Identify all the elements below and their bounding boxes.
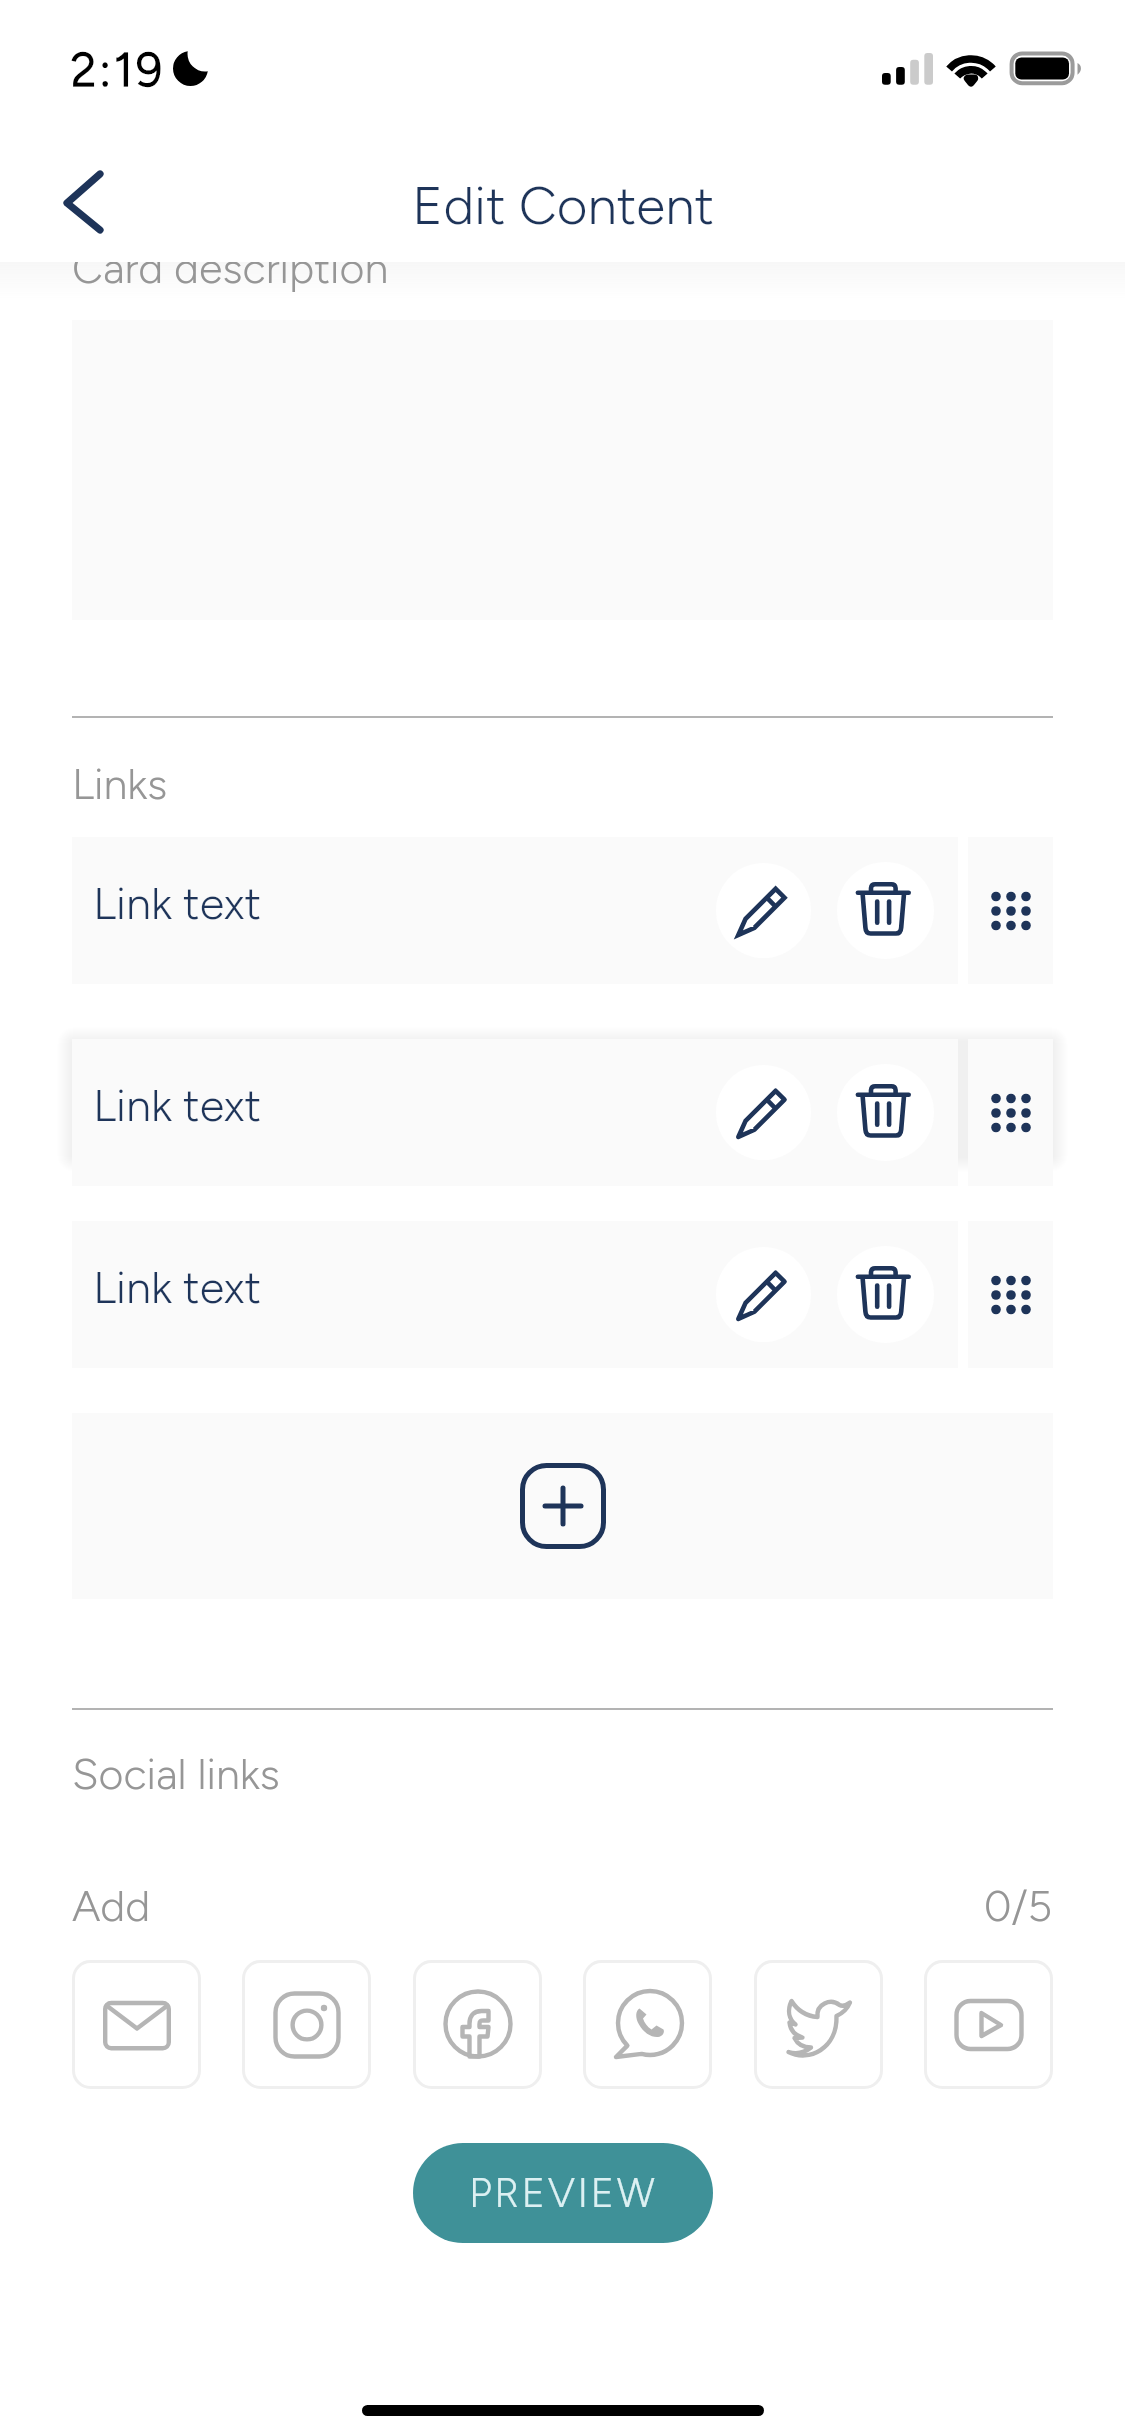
button[interactable]: Add link [520,1463,606,1549]
staticText: 0/5 [984,1880,1053,1932]
button[interactable]: Delete link [837,862,934,959]
staticText: Link text [93,1078,261,1132]
button[interactable]: YouTube [924,1960,1053,2089]
button[interactable]: WhatsApp [583,1960,712,2089]
button[interactable]: Reorder link [968,837,1053,984]
button[interactable]: Twitter [754,1960,883,2089]
staticText: Add [72,1880,151,1932]
staticText: Edit Content [412,174,714,238]
button[interactable]: Delete link [837,1246,934,1343]
button[interactable]: Link text [72,1221,958,1368]
button[interactable]: Delete link [837,1064,934,1161]
button[interactable]: Facebook [413,1960,542,2089]
button[interactable]: Reorder link [968,1221,1053,1368]
button[interactable]: PREVIEW [413,2143,713,2243]
button[interactable]: Email [72,1960,201,2089]
staticText: Card description [72,242,389,294]
button[interactable]: Back [30,158,104,248]
staticText: 2:19 [71,42,166,97]
button[interactable]: Instagram [242,1960,371,2089]
button[interactable]: Link text [72,837,958,984]
staticText: PREVIEW [469,2169,658,2217]
button[interactable]: Edit link [716,1065,811,1160]
staticText: Link text [93,876,261,930]
staticText: Link text [93,1260,261,1314]
button[interactable]: Reorder link [968,1039,1053,1186]
staticText: Social links [72,1748,280,1800]
button[interactable]: Edit link [716,1247,811,1342]
staticText: Links [72,758,168,810]
button[interactable]: Edit link [716,863,811,958]
button[interactable]: Link text [72,1039,958,1186]
